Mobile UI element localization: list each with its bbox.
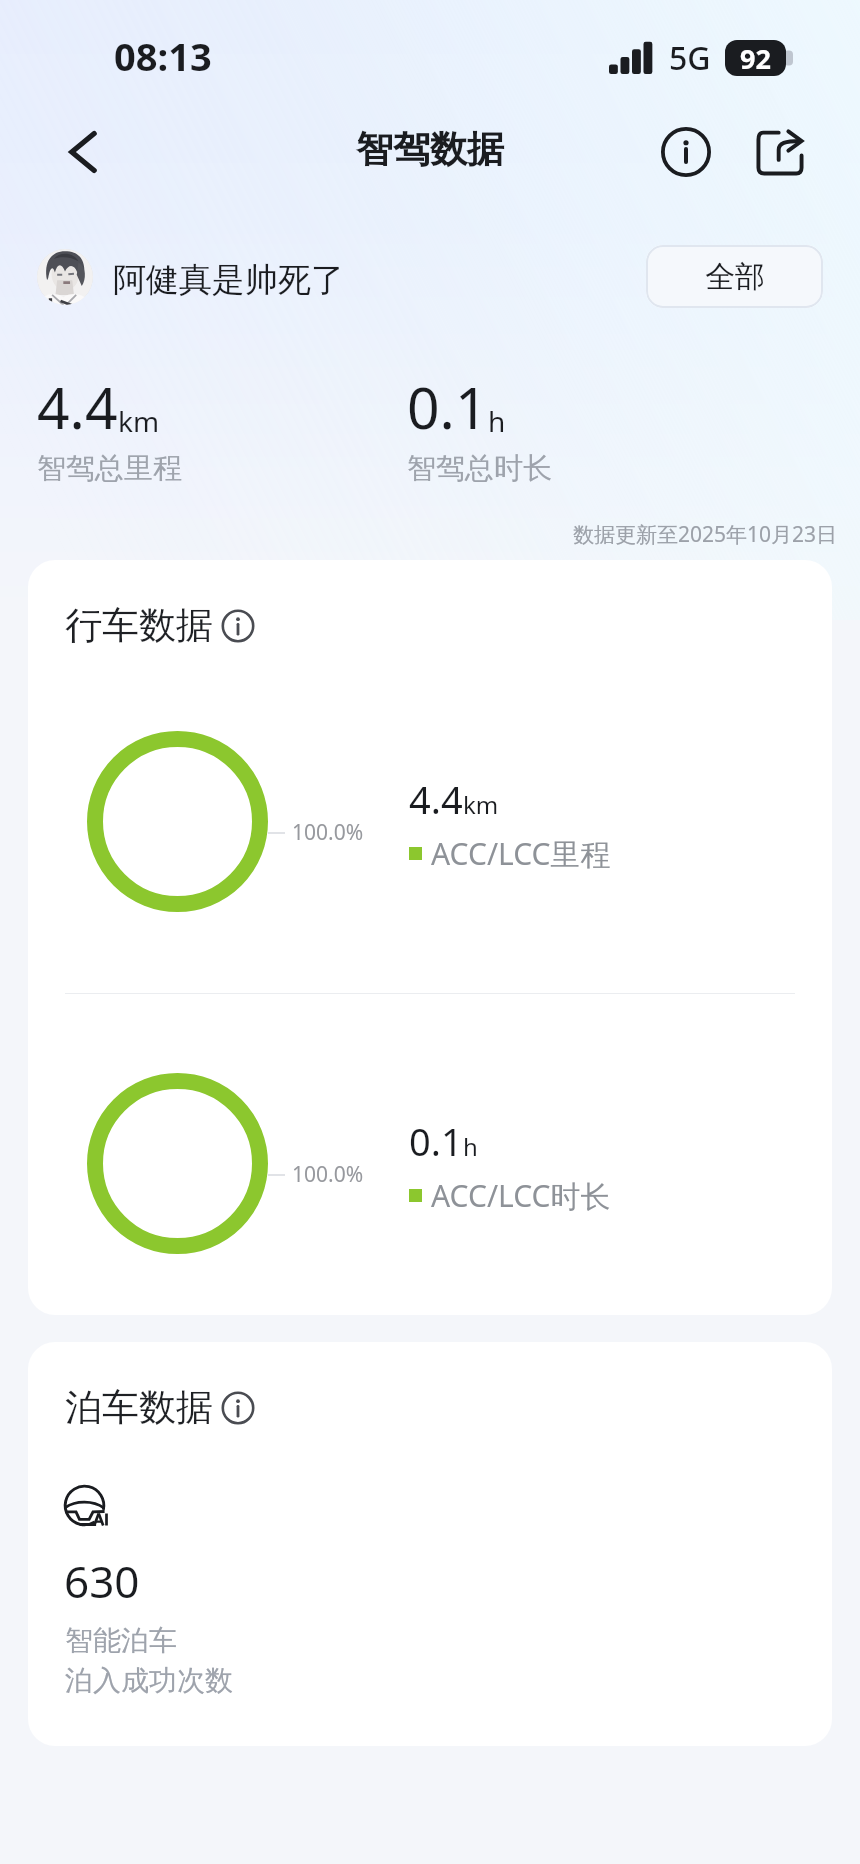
staticText: km [118,402,160,440]
staticText: 630 [64,1551,140,1611]
staticText: 泊入成功次数 [65,1663,233,1698]
staticText: h [488,402,506,440]
staticText: ACC/LCC时长 [431,1175,611,1216]
staticText: 智能泊车 [65,1623,177,1658]
staticText: 智驾数据 [356,126,504,173]
staticText: 5G [669,36,711,80]
staticText: 0.1 [409,1115,463,1167]
staticText: 泊车数据 [65,1384,213,1431]
staticText: 100.0% [292,818,364,847]
staticText: 92 [740,40,771,76]
staticText: h [463,1130,478,1163]
staticText: 智驾总里程 [37,450,182,487]
button[interactable]: Info [216,604,260,648]
staticText: km [463,788,499,821]
staticText: 数据更新至2025年10月23日 [573,520,838,549]
button[interactable]: Back [49,118,117,186]
staticText: 0.1 [407,368,488,446]
staticText: ACC/LCC里程 [431,833,611,874]
staticText: 08:13 [114,30,212,82]
button[interactable]: 全部 [646,245,823,308]
staticText: 4.4 [409,773,463,825]
staticText: 全部 [705,258,765,296]
button[interactable]: Share [742,114,818,190]
button[interactable]: Info [648,114,724,190]
staticText: 阿健真是帅死了 [113,259,344,301]
staticText: 100.0% [292,1160,364,1189]
staticText: 行车数据 [65,602,213,649]
button[interactable]: 阿健真是帅死了 [37,249,344,305]
button[interactable]: Smart parking successes [56,1470,316,1685]
staticText: 智驾总时长 [407,450,552,487]
staticText: 4.4 [37,368,118,446]
button[interactable]: Info [216,1386,260,1430]
